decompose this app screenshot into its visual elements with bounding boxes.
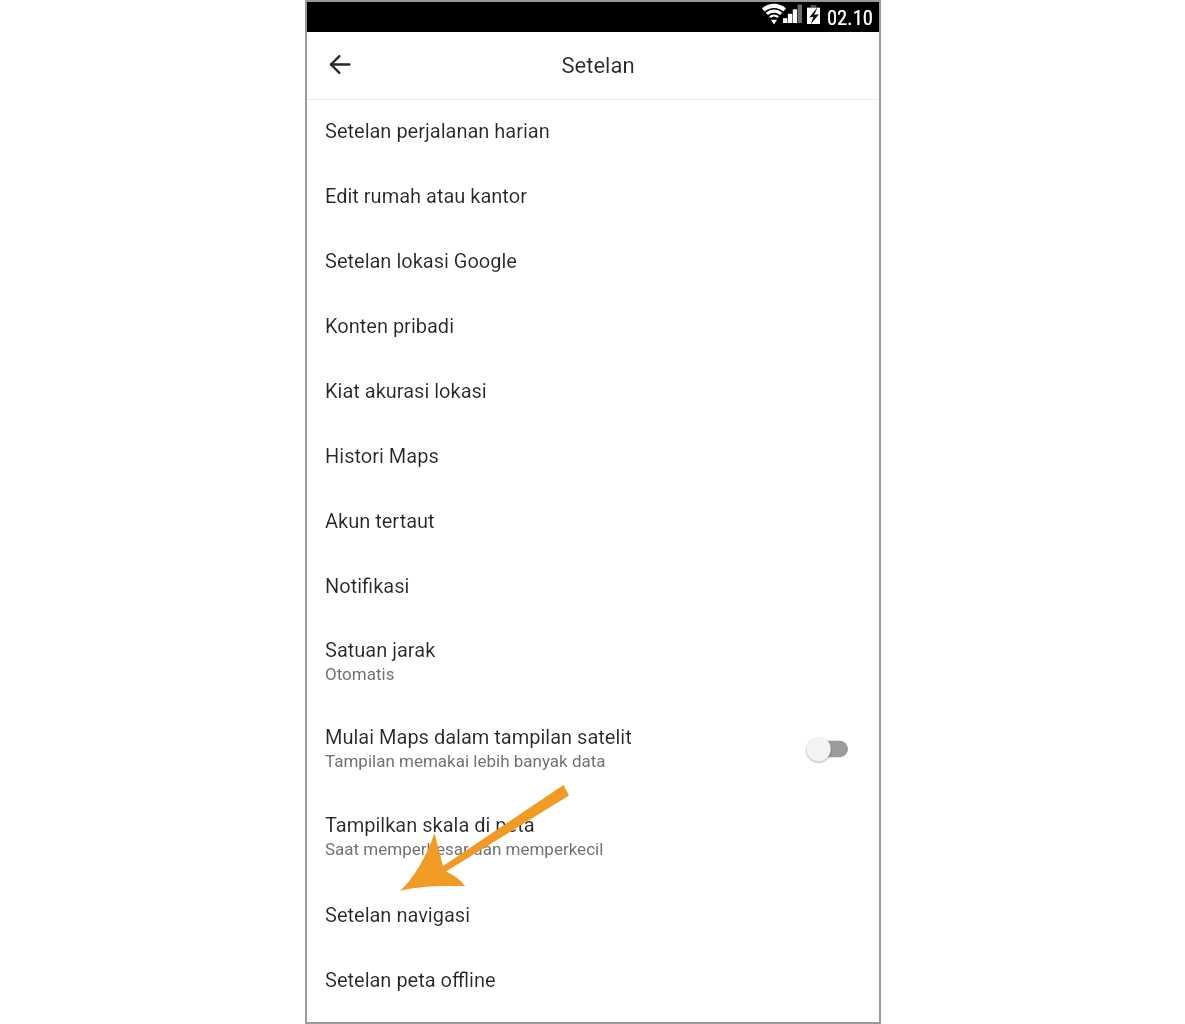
staticText: Konten pribadi [325,314,455,337]
staticText: Histori Maps [325,444,439,467]
staticText: Mulai Maps dalam tampilan satelit [325,725,632,748]
button[interactable]: Tampilkan skala di peta [307,794,879,884]
button[interactable]: Setelan navigasi [307,884,879,949]
staticText: Setelan [561,53,635,79]
button[interactable]: Satuan jarak [307,620,879,707]
button[interactable]: Setelan lokasi Google [307,230,879,295]
staticText: Notifikasi [325,574,410,597]
staticText: Otomatis [325,664,395,684]
staticText: Kiat akurasi lokasi [325,379,487,402]
button[interactable]: Edit rumah atau kantor [307,165,879,230]
button[interactable]: Mulai Maps dalam tampilan satelit [307,707,879,794]
button[interactable]: Akun tertaut [307,490,879,555]
button[interactable]: Setelan perjalanan harian [307,100,879,165]
staticText: Setelan peta offline [325,968,496,991]
staticText: Setelan navigasi [325,903,470,926]
staticText: Akun tertaut [325,509,435,532]
button[interactable]: Kiat akurasi lokasi [307,360,879,425]
staticText: Tampilkan skala di peta [325,813,535,836]
staticText: Tampilan memakai lebih banyak data [325,751,606,771]
button[interactable]: Start Maps in satellite view toggle [806,735,848,763]
staticText: Setelan lokasi Google [325,249,517,272]
button[interactable]: Histori Maps [307,425,879,490]
staticText: Edit rumah atau kantor [325,184,527,207]
staticText: Satuan jarak [325,638,436,661]
button[interactable]: Setelan peta offline [307,949,879,1014]
staticText: Saat memperbesar dan memperkecil [325,839,604,859]
button[interactable]: Konten pribadi [307,295,879,360]
button[interactable]: Notifikasi [307,555,879,620]
button[interactable]: Back [316,42,364,90]
staticText: Setelan perjalanan harian [325,119,550,142]
staticText: 02.10 [827,6,873,30]
